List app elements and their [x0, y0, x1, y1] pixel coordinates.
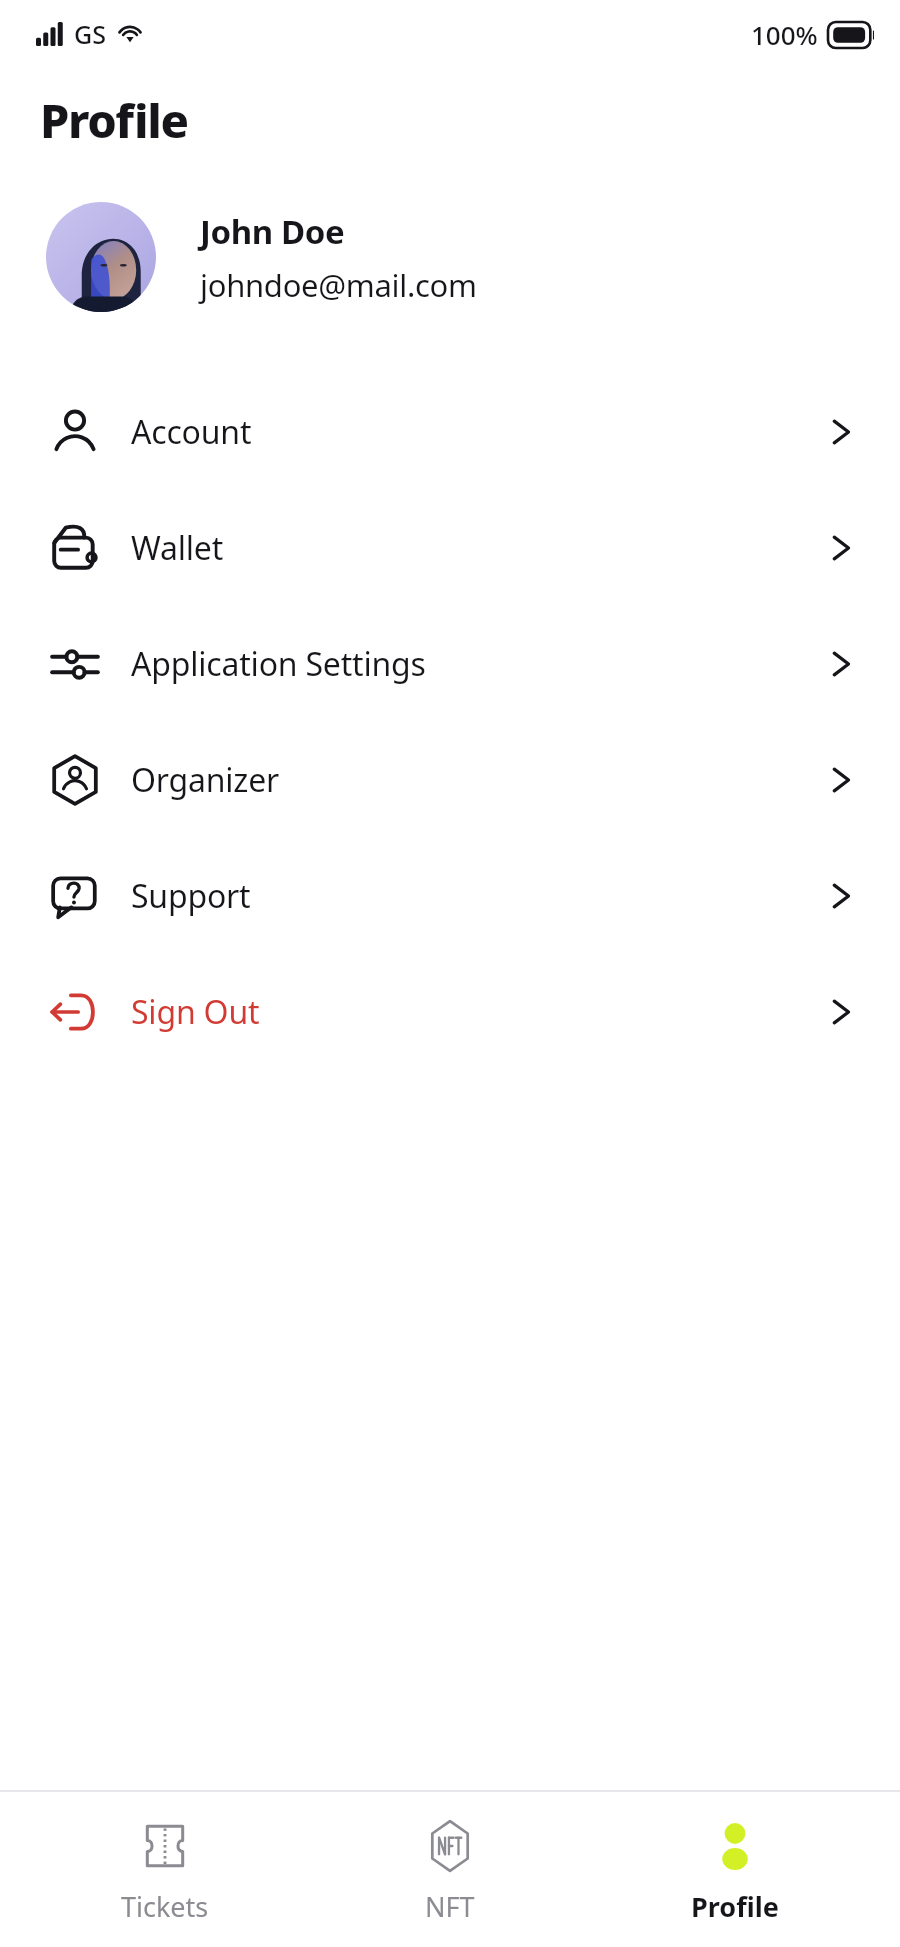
- staticText: NFT: [425, 1888, 475, 1925]
- other: Wallet: [822, 531, 856, 565]
- staticText: Sign Out: [131, 990, 260, 1034]
- other: Application Settings: [822, 647, 856, 681]
- other: Organizer: [822, 763, 856, 797]
- button[interactable]: Profile: [615, 1810, 855, 1933]
- button[interactable]: John Doe: [46, 202, 900, 312]
- staticText: 100%: [751, 17, 818, 52]
- button[interactable]: Wallet: [0, 490, 900, 606]
- staticText: Account: [131, 410, 252, 454]
- button[interactable]: Account: [0, 374, 900, 490]
- staticText: Support: [131, 874, 251, 918]
- staticText: Wallet: [131, 526, 223, 570]
- other: Support: [822, 879, 856, 913]
- staticText: Organizer: [131, 758, 280, 802]
- button[interactable]: Tickets: [45, 1810, 285, 1933]
- staticText: John Doe: [200, 209, 345, 254]
- button[interactable]: Application Settings: [0, 606, 900, 722]
- other: Account: [822, 415, 856, 449]
- button[interactable]: Organizer: [0, 722, 900, 838]
- staticText: Profile: [691, 1888, 779, 1925]
- staticText: Tickets: [121, 1888, 209, 1925]
- staticText: Profile: [40, 88, 188, 152]
- button[interactable]: Support: [0, 838, 900, 954]
- other: Sign Out: [822, 995, 856, 1029]
- button[interactable]: NFT: [330, 1810, 570, 1933]
- staticText: Application Settings: [131, 642, 426, 686]
- button[interactable]: Sign Out: [0, 954, 900, 1070]
- staticText: GS: [74, 17, 106, 51]
- staticText: johndoe@mail.com: [200, 264, 477, 306]
